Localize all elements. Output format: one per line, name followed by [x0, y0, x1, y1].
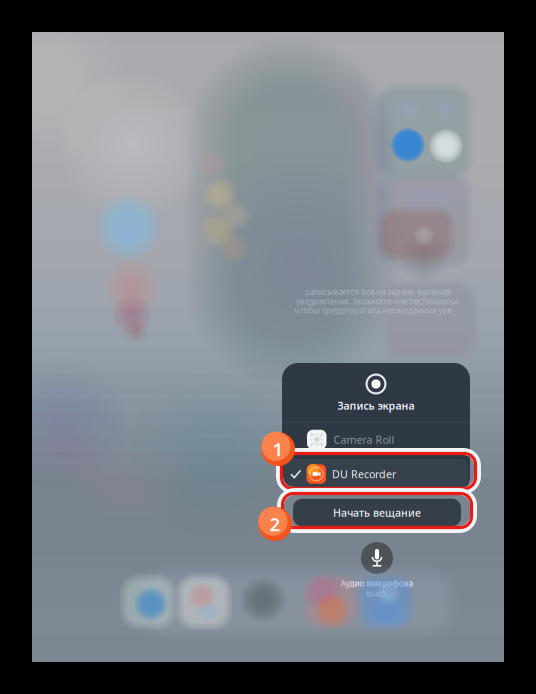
staticText: Выкл. [366, 588, 388, 599]
staticText: 1 [272, 437, 283, 461]
staticText: чтобы предотвратить неожиданные уве [294, 305, 451, 316]
staticText: Аудио микрофона [340, 578, 413, 589]
staticText: уведомления. Включите «Не беспокоить», [296, 296, 460, 307]
staticText: 2 [269, 512, 280, 536]
button[interactable]: Начать вещание [293, 499, 461, 526]
staticText: Запись экрана [337, 398, 414, 413]
button[interactable]: Camera Roll [282, 424, 470, 454]
staticText: Записывается все на экране, включая [304, 287, 451, 297]
staticText: Camera Roll [333, 432, 394, 447]
button[interactable]: DU Recorder [282, 459, 470, 489]
staticText: Начать вещание [333, 505, 421, 520]
staticText: DU Recorder [332, 467, 396, 481]
button[interactable]: Microphone audio off [361, 542, 393, 574]
